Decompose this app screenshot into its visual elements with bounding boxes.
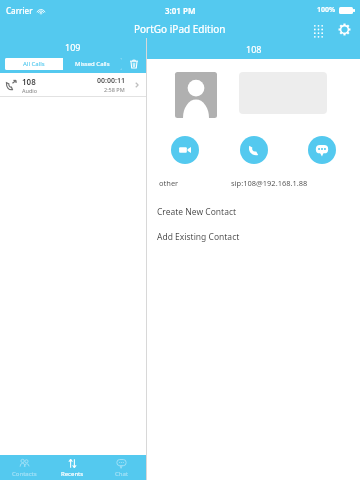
button[interactable]: Video call (171, 136, 199, 164)
button[interactable]: Create New Contact (147, 203, 360, 220)
button[interactable]: Missed Calls (63, 58, 122, 70)
button[interactable]: 108 (0, 73, 146, 96)
staticText: 3:01 PM (165, 5, 196, 16)
button[interactable]: Contacts (0, 455, 48, 480)
staticText: Recents (61, 470, 84, 478)
staticText: Contacts (12, 470, 37, 478)
staticText: Create New Contact (157, 206, 237, 218)
staticText: All Calls (23, 60, 45, 68)
button[interactable]: All Calls (5, 58, 63, 70)
staticText: Audio (22, 87, 38, 94)
staticText: Carrier (6, 5, 33, 16)
button[interactable]: Delete (127, 57, 141, 71)
button[interactable]: Add Existing Contact (147, 228, 360, 245)
staticText: Add Existing Contact (157, 231, 240, 243)
staticText: 100% (317, 5, 336, 15)
staticText: sip:108@192.168.1.88 (231, 178, 308, 188)
button[interactable]: Settings (334, 20, 354, 38)
button[interactable]: Keypad (308, 20, 328, 38)
button[interactable]: Chat (97, 455, 146, 480)
staticText: Missed Calls (75, 60, 110, 68)
staticText: 109 (65, 41, 81, 53)
staticText: PortGo iPad Edition (134, 22, 226, 36)
staticText: 2:58 PM (104, 86, 125, 93)
button[interactable]: Audio call (240, 136, 268, 164)
staticText: 108 (246, 43, 262, 55)
staticText: other (159, 178, 179, 188)
button[interactable]: Chat (308, 136, 336, 164)
staticText: Chat (115, 470, 129, 478)
staticText: 00:00:11 (97, 76, 125, 86)
button[interactable]: Recents (48, 455, 97, 480)
staticText: 108 (22, 76, 36, 87)
